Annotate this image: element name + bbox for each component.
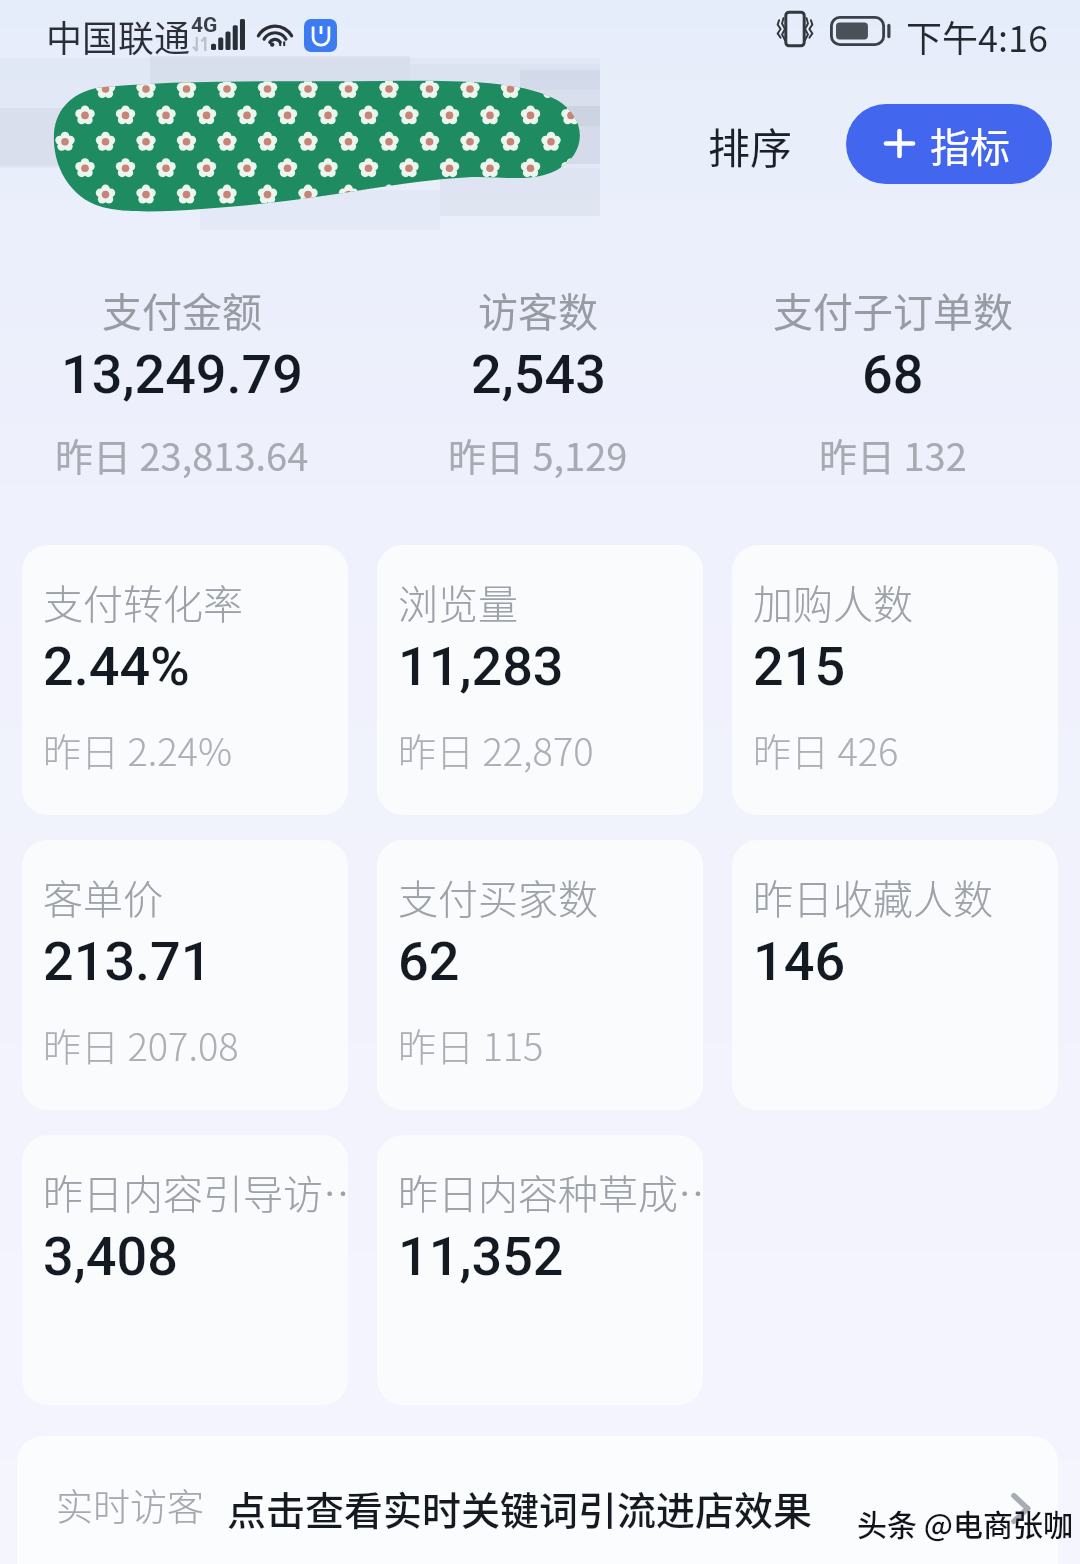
staticText: 支付金额 (102, 281, 262, 339)
staticText: 昨日 132 (819, 427, 967, 482)
button[interactable]: 访客数 (368, 281, 708, 486)
staticText: 昨日 426 (753, 722, 899, 777)
staticText: 支付子订单数 (773, 281, 1013, 339)
staticText: 点击查看实时关键词引流进店效果 (227, 1480, 813, 1536)
staticText: 排序 (708, 115, 793, 176)
button[interactable]: 实时访客 (17, 1436, 1058, 1564)
staticText: 头条 @电商张咖 (857, 1501, 1073, 1544)
button[interactable]: 客单价 (22, 840, 348, 1110)
staticText: 昨日内容引导访… (43, 1163, 348, 1221)
other: 查看详情 (1010, 1494, 1032, 1523)
button[interactable]: 支付子订单数 (723, 281, 1063, 486)
staticText: 213.71 (43, 930, 212, 993)
staticText: 指标 (930, 116, 1010, 174)
staticText: 浏览量 (398, 573, 518, 631)
staticText: 昨日收藏人数 (753, 868, 993, 926)
staticText: 2.44% (43, 635, 190, 698)
staticText: 昨日内容种草成… (398, 1163, 703, 1221)
staticText: 2,543 (471, 343, 606, 406)
staticText: 4G (191, 13, 218, 38)
button[interactable]: 浏览量 (377, 545, 703, 815)
staticText: 中国联通 (46, 10, 191, 62)
staticText: 昨日 207.08 (43, 1017, 239, 1072)
staticText: 客单价 (43, 868, 163, 926)
staticText: 昨日 115 (398, 1017, 544, 1072)
staticText: 3,408 (43, 1225, 178, 1288)
staticText: 215 (753, 635, 846, 698)
button[interactable]: 支付转化率 (22, 545, 348, 815)
staticText: 昨日 5,129 (448, 427, 628, 482)
staticText: 加购人数 (753, 573, 913, 631)
staticText: 支付买家数 (398, 868, 598, 926)
staticText: 昨日 23,813.64 (55, 427, 309, 482)
staticText: 146 (753, 930, 846, 993)
button[interactable]: 加购人数 (732, 545, 1058, 815)
button[interactable]: 支付买家数 (377, 840, 703, 1110)
staticText: 下午4:16 (906, 10, 1048, 62)
staticText: 11,283 (398, 635, 564, 698)
staticText: 支付转化率 (43, 573, 243, 631)
staticText: 11,352 (398, 1225, 564, 1288)
button[interactable]: 昨日收藏人数 (732, 840, 1058, 1110)
button[interactable]: 昨日内容引导访… (22, 1135, 348, 1405)
button[interactable]: 支付金额 (12, 281, 352, 486)
button[interactable]: 排序 (694, 106, 807, 185)
staticText: 昨日 22,870 (398, 722, 594, 777)
staticText: 13,249.79 (61, 343, 303, 406)
staticText: 62 (398, 930, 460, 993)
button[interactable]: 昨日内容种草成… (377, 1135, 703, 1405)
staticText: 访客数 (478, 281, 598, 339)
staticText: 68 (862, 343, 924, 406)
staticText: 实时访客 (56, 1478, 204, 1532)
staticText: 昨日 2.24% (43, 722, 232, 777)
button[interactable]: 指标 (846, 104, 1052, 184)
